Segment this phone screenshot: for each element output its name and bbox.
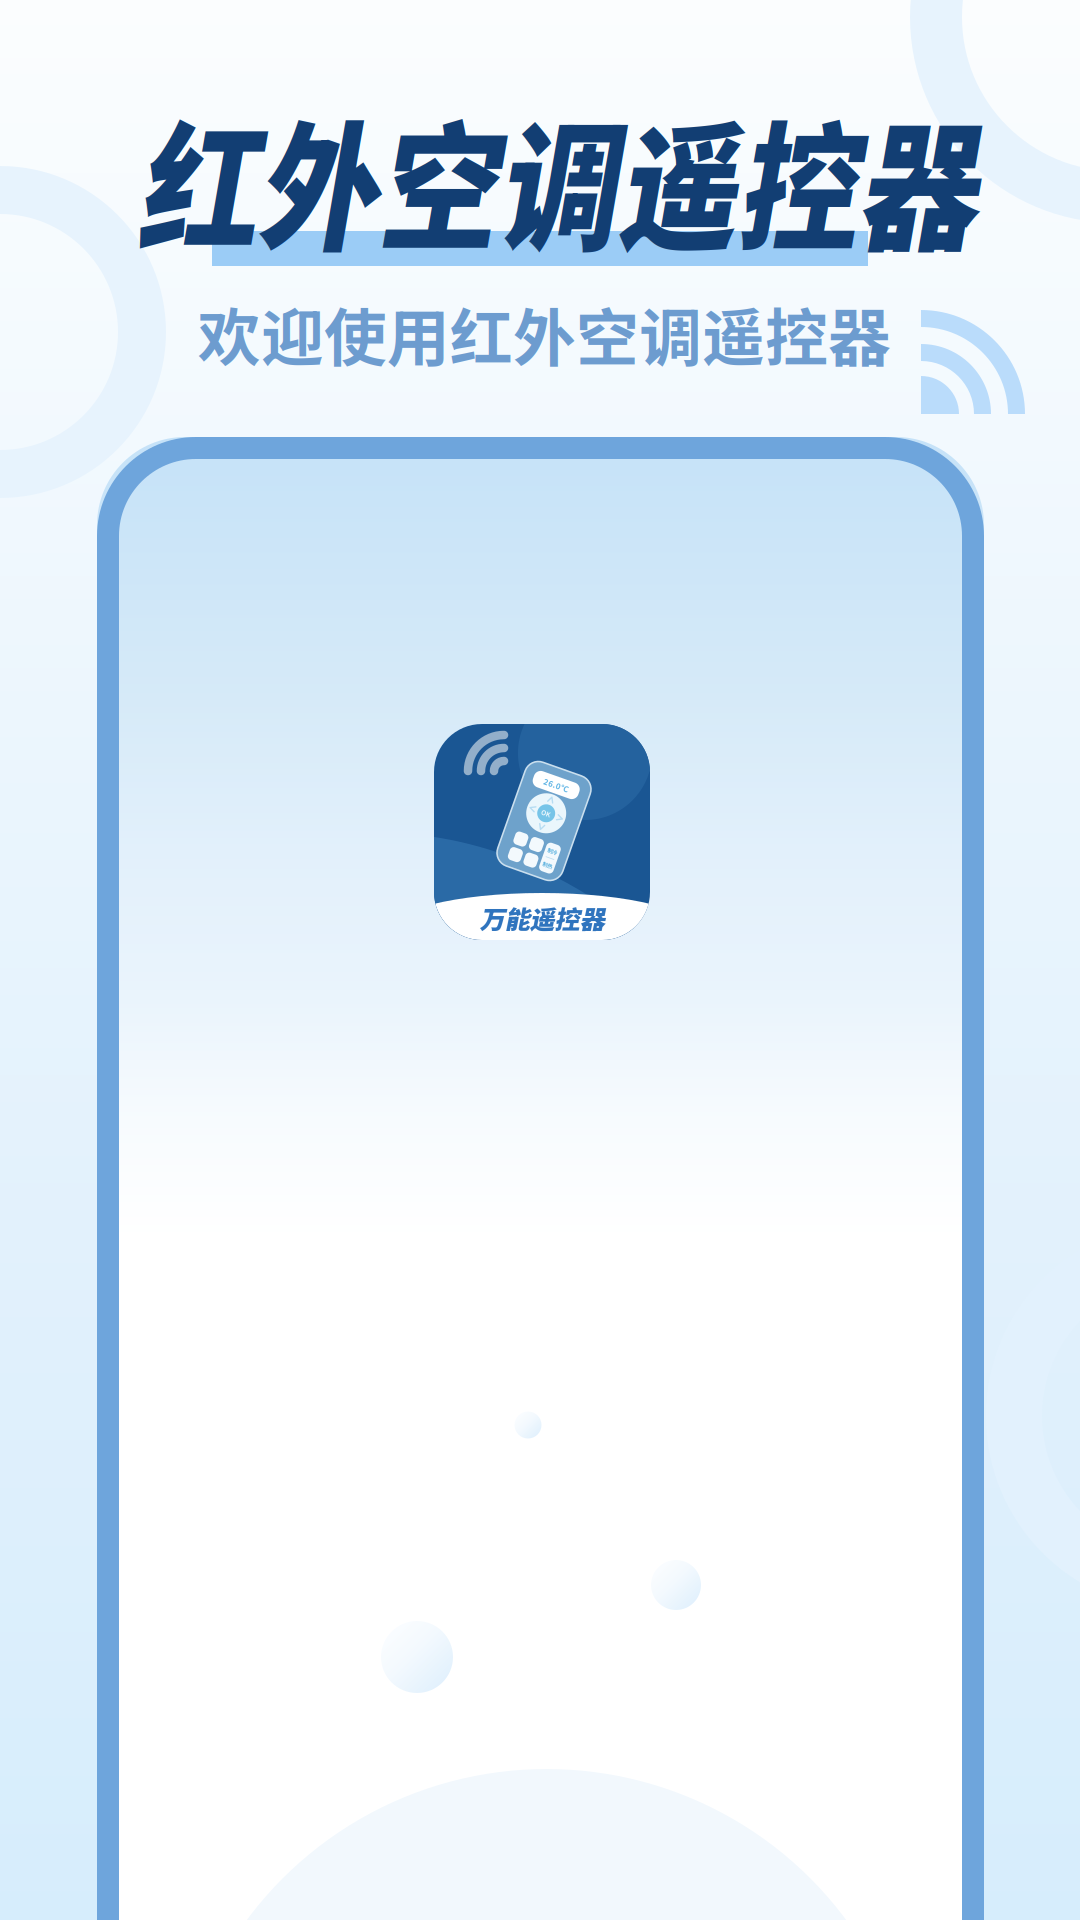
staticText: 万能遥控器 <box>479 900 604 936</box>
staticText: 制热 <box>557 857 567 865</box>
staticText: 红外空调遥控器 <box>136 92 976 266</box>
staticText: 制冷 <box>557 843 567 851</box>
staticText: OK <box>538 808 548 818</box>
button[interactable]: 万能遥控器 <box>434 724 650 940</box>
staticText: 欢迎使用红外空调遥控器 <box>198 288 891 379</box>
staticText: 26.0°C <box>530 777 556 789</box>
